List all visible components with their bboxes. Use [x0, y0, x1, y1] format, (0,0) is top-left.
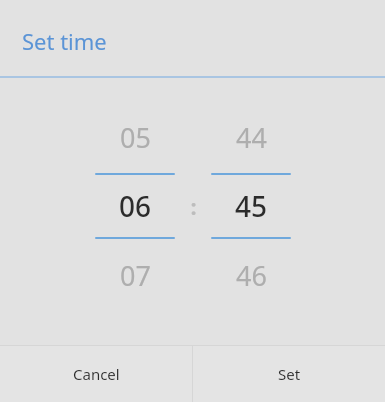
staticText: 46 [236, 257, 267, 294]
button[interactable]: Hours increment [86, 107, 184, 167]
button[interactable]: Hours decrement [86, 245, 184, 305]
staticText: Cancel [73, 364, 120, 384]
staticText: 05 [120, 119, 151, 156]
staticText: 45 [235, 187, 268, 225]
staticText: Set [278, 364, 301, 384]
staticText: 07 [120, 257, 151, 294]
button[interactable]: Minutes value 45 [202, 175, 300, 237]
button[interactable]: Cancel [0, 346, 192, 402]
button[interactable]: Set [193, 346, 385, 402]
button[interactable]: Hours value 06 [86, 175, 184, 237]
button[interactable]: Hours increment [86, 107, 184, 305]
button[interactable]: Minutes decrement [202, 245, 300, 305]
staticText: : [190, 191, 197, 221]
button[interactable]: Minutes increment [202, 107, 300, 305]
staticText: Set time [22, 26, 107, 56]
staticText: 44 [236, 119, 267, 156]
button[interactable]: Minutes increment [202, 107, 300, 167]
staticText: 06 [119, 187, 152, 225]
